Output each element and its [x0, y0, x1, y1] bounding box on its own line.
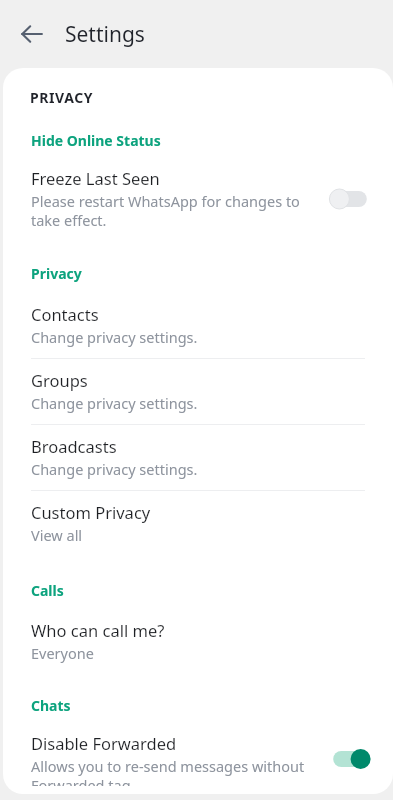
staticText: View all — [31, 525, 83, 545]
button[interactable]: Toggle on — [329, 746, 371, 772]
staticText: Please restart WhatsApp for changes to t… — [31, 191, 300, 230]
staticText: Broadcasts — [31, 435, 117, 457]
staticText: Privacy — [31, 264, 82, 283]
staticText: Settings — [65, 20, 145, 49]
staticText: PRIVACY — [30, 88, 94, 107]
staticText: Contacts — [31, 303, 99, 325]
staticText: Allows you to re-send messages without F… — [31, 756, 305, 786]
button[interactable]: Who can call me? — [3, 609, 393, 674]
button[interactable]: Broadcasts — [3, 425, 393, 490]
staticText: Change privacy settings. — [31, 459, 198, 479]
button[interactable]: Freeze Last Seen — [3, 161, 393, 238]
button[interactable]: Custom Privacy — [3, 491, 393, 556]
staticText: Everyone — [31, 643, 94, 663]
staticText: Disable Forwarded — [31, 732, 177, 754]
staticText: Freeze Last Seen — [31, 167, 160, 189]
staticText: Groups — [31, 369, 88, 391]
button[interactable]: Groups — [3, 359, 393, 424]
button[interactable]: Contacts — [3, 293, 393, 358]
staticText: Calls — [31, 581, 64, 600]
staticText: Who can call me? — [31, 619, 165, 641]
button[interactable]: Disable Forwarded — [3, 726, 393, 794]
button[interactable]: Back — [8, 10, 56, 58]
staticText: Hide Online Status — [31, 131, 161, 150]
staticText: Custom Privacy — [31, 501, 151, 523]
staticText: Change privacy settings. — [31, 393, 198, 413]
button[interactable]: Toggle off — [329, 186, 371, 212]
staticText: Chats — [31, 696, 71, 715]
staticText: Change privacy settings. — [31, 327, 198, 347]
